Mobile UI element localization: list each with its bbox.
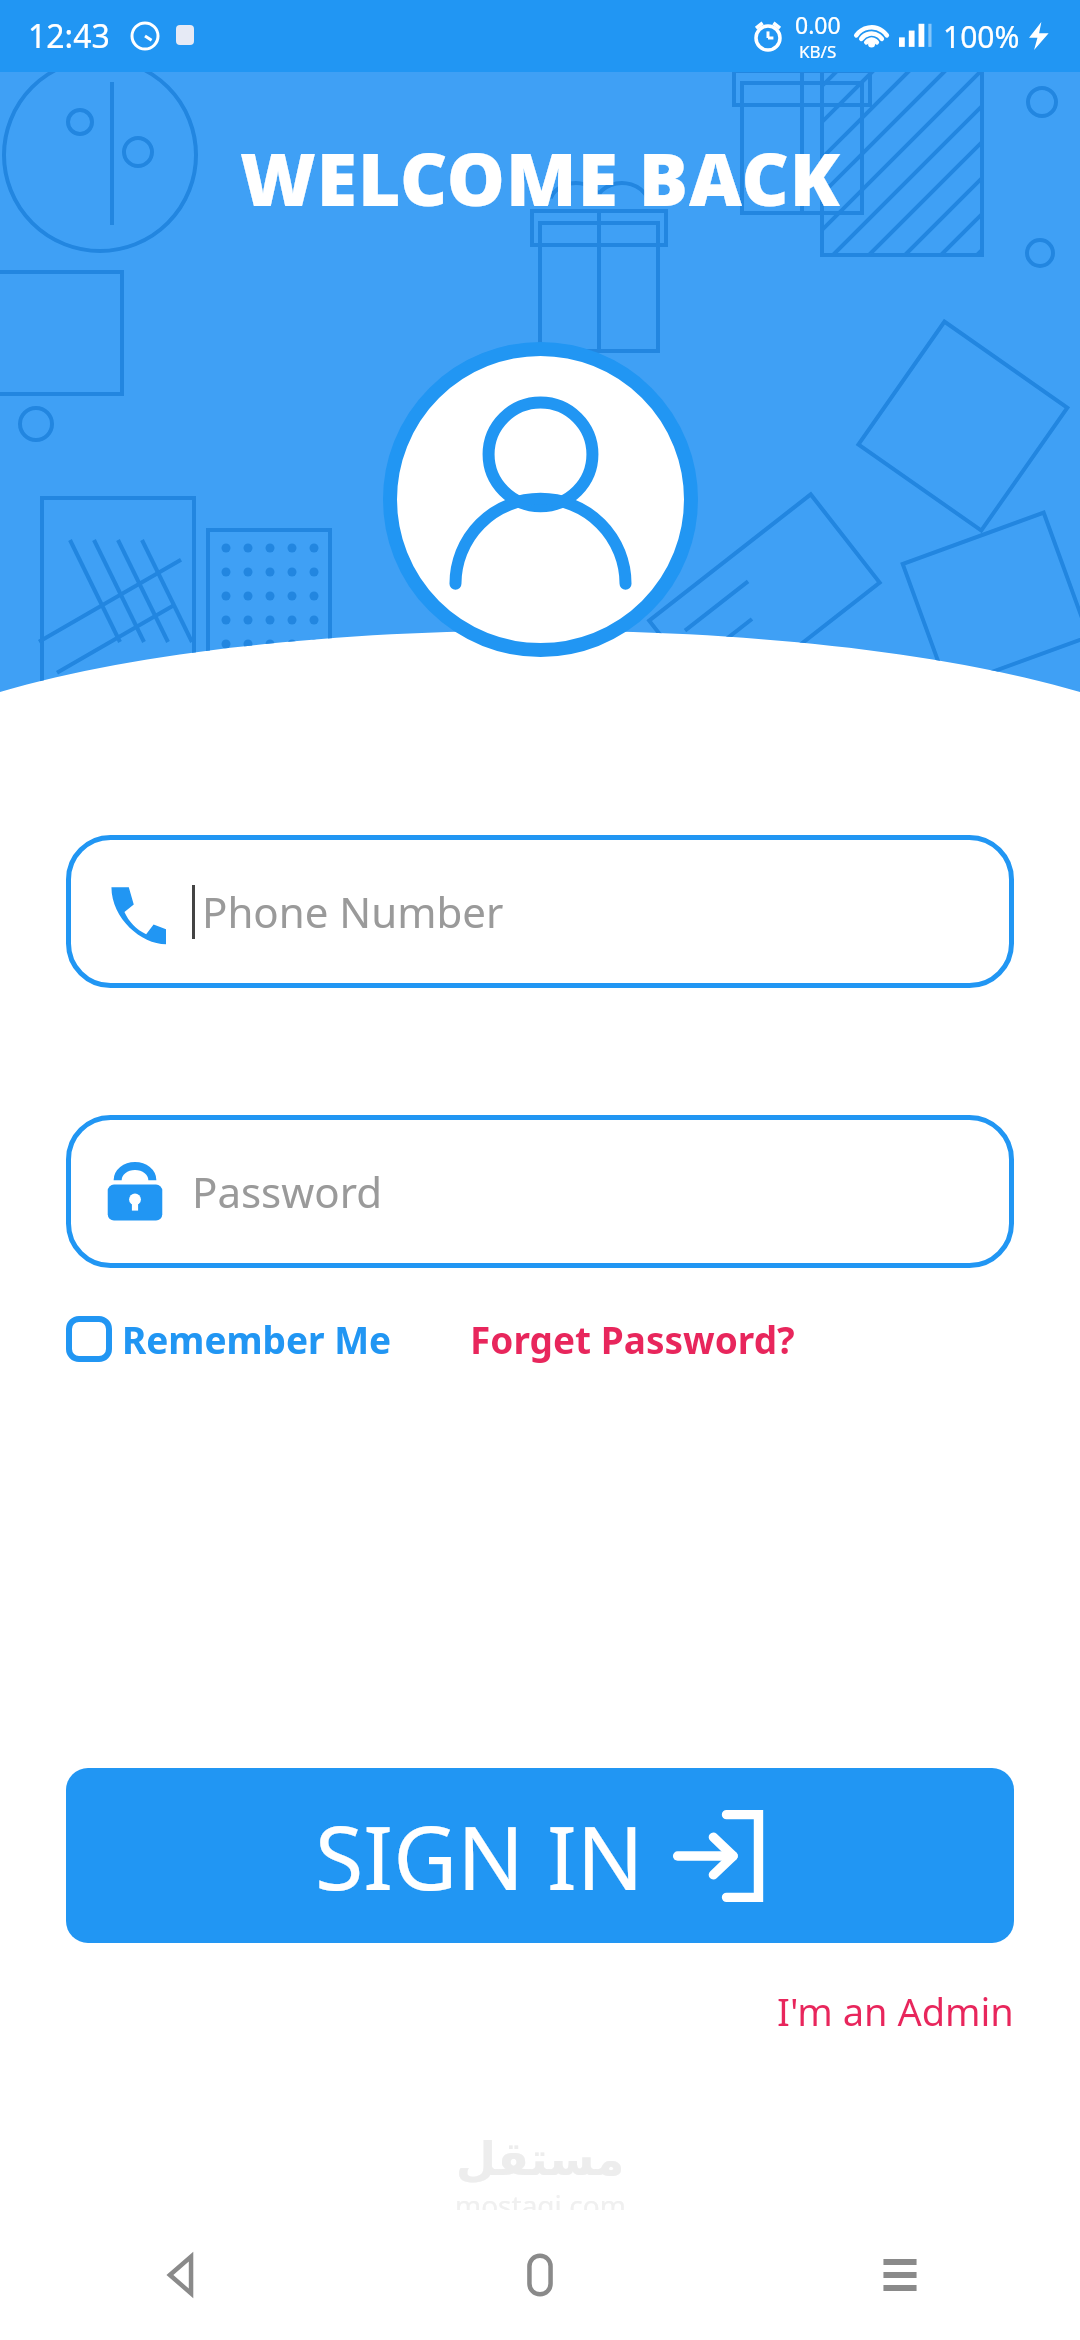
staticText: KB/S xyxy=(799,40,837,63)
button[interactable]: Phone Number xyxy=(66,835,1014,988)
button[interactable]: Password xyxy=(66,1115,1014,1268)
button[interactable]: Recent apps xyxy=(720,2210,1080,2340)
staticText: I'm an Admin xyxy=(777,1985,1014,2037)
staticText: Phone Number xyxy=(202,883,504,940)
staticText: 0.00 xyxy=(795,9,841,40)
staticText: Password xyxy=(192,1163,382,1220)
staticText: Forget Password? xyxy=(470,1314,795,1364)
button[interactable]: SIGN IN xyxy=(66,1768,1014,1943)
staticText: WELCOME BACK xyxy=(240,128,841,227)
staticText: مستقل xyxy=(456,2132,625,2186)
button[interactable]: Remember Me xyxy=(66,1306,392,1372)
staticText: 12:43 xyxy=(28,14,110,58)
button[interactable]: I'm an Admin xyxy=(769,1977,1022,2045)
staticText: SIGN IN xyxy=(315,1796,644,1916)
button[interactable]: Back xyxy=(0,2210,360,2340)
staticText: Remember Me xyxy=(122,1314,392,1364)
button[interactable]: Forget Password? xyxy=(470,1306,795,1372)
staticText: 100% xyxy=(943,16,1020,57)
staticText: mostaqi.com xyxy=(455,2186,626,2224)
button[interactable]: Home xyxy=(360,2210,720,2340)
